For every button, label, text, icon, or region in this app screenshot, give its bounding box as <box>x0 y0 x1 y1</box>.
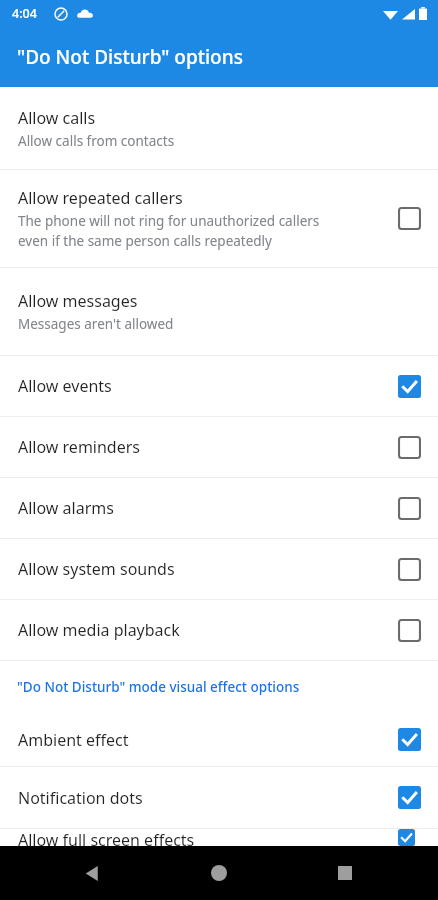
staticText: Allow media playback <box>18 619 180 641</box>
button[interactable]: Allow full screen effects <box>0 829 438 846</box>
button[interactable]: Back <box>72 853 112 893</box>
staticText: Messages aren't allowed <box>18 315 174 333</box>
button[interactable]: Allow repeated callers <box>0 170 438 267</box>
button[interactable]: Notification dots <box>0 767 438 828</box>
staticText: Notification dots <box>18 787 143 809</box>
staticText: "Do Not Disturb" options <box>17 44 243 70</box>
button[interactable]: Allow media playback <box>0 600 438 660</box>
button[interactable]: Allow events <box>0 356 438 416</box>
staticText: Allow messages <box>18 290 138 312</box>
staticText: Allow full screen effects <box>18 829 195 846</box>
staticText: Allow calls from contacts <box>18 132 175 150</box>
button[interactable]: Allow messages <box>0 268 438 355</box>
staticText: Allow calls <box>18 107 96 129</box>
button[interactable]: Home <box>199 853 239 893</box>
button[interactable]: Ambient effect <box>0 713 438 766</box>
staticText: Ambient effect <box>18 729 129 751</box>
staticText: The phone will not ring for unauthorized… <box>18 212 320 250</box>
staticText: Allow system sounds <box>18 558 175 580</box>
button[interactable]: Allow calls <box>0 87 438 169</box>
staticText: "Do Not Disturb" mode visual effect opti… <box>17 678 300 696</box>
button[interactable]: Allow reminders <box>0 417 438 477</box>
staticText: Allow events <box>18 375 112 397</box>
button[interactable]: Allow alarms <box>0 478 438 538</box>
staticText: Allow repeated callers <box>18 187 183 209</box>
staticText: Allow reminders <box>18 436 141 458</box>
button[interactable]: Recent apps <box>325 853 365 893</box>
staticText: 4:04 <box>12 5 37 22</box>
staticText: Allow alarms <box>18 497 114 519</box>
button[interactable]: Allow system sounds <box>0 539 438 599</box>
